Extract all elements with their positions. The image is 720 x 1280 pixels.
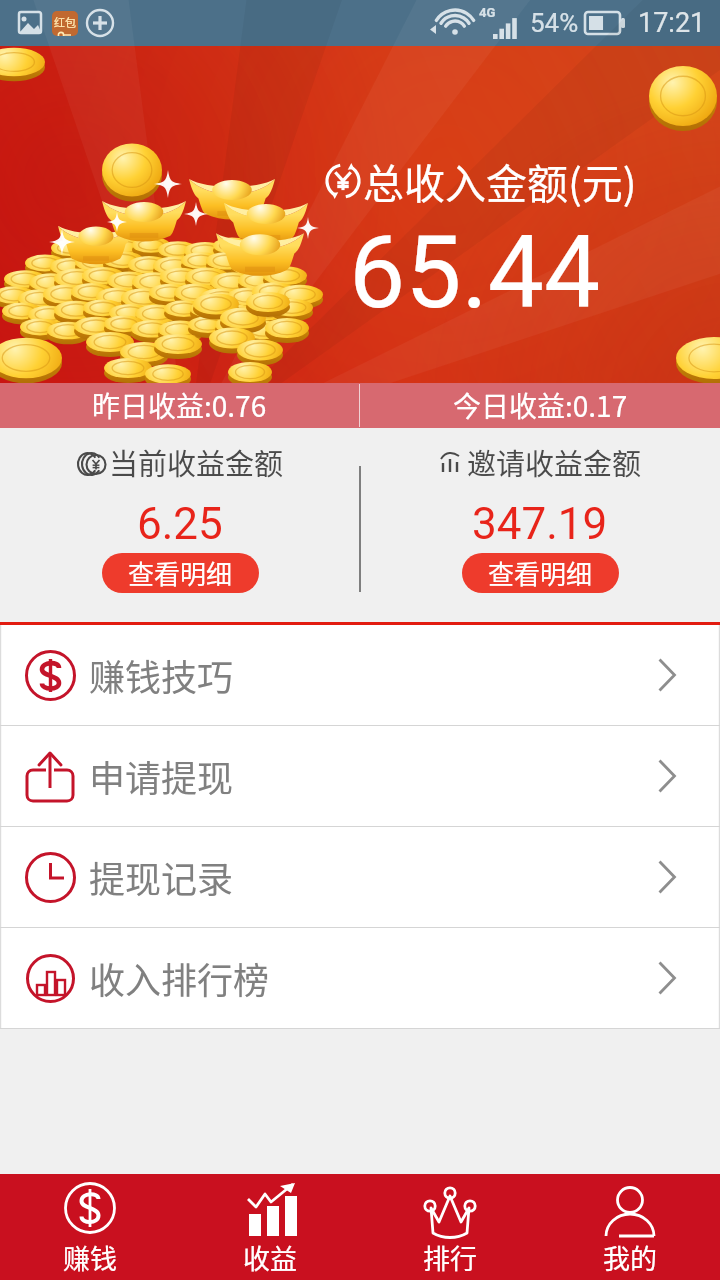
- staticText: 总收入金额(元): [363, 151, 637, 210]
- button[interactable]: 赚钱技巧: [0, 625, 720, 725]
- button[interactable]: 查看明细: [102, 553, 259, 593]
- button[interactable]: 我的: [540, 1174, 720, 1280]
- button[interactable]: 排行: [360, 1174, 540, 1280]
- staticText: 赚钱: [63, 1238, 117, 1277]
- button[interactable]: Refresh total income: [324, 162, 362, 200]
- button[interactable]: 申请提现: [0, 726, 720, 826]
- button[interactable]: 提现记录: [0, 827, 720, 927]
- staticText: 我的: [603, 1238, 657, 1277]
- staticText: 提现记录: [89, 851, 234, 903]
- button[interactable]: 收益: [180, 1174, 360, 1280]
- button[interactable]: 查看明细: [462, 553, 619, 593]
- staticText: 54%: [530, 8, 579, 38]
- staticText: 347.19: [472, 498, 608, 550]
- staticText: 申请提现: [89, 750, 234, 802]
- staticText: 邀请收益金额: [467, 441, 642, 483]
- staticText: 查看明细: [488, 554, 593, 592]
- staticText: 当前收益金额: [109, 441, 284, 483]
- staticText: 17:21: [638, 7, 706, 39]
- staticText: 查看明细: [128, 554, 233, 592]
- staticText: 6.25: [137, 498, 223, 550]
- staticText: 今日收益:0.17: [453, 385, 628, 426]
- staticText: 4G: [479, 5, 496, 20]
- staticText: 赚钱技巧: [89, 649, 234, 701]
- staticText: 收入排行榜: [89, 952, 270, 1004]
- staticText: 收益: [243, 1238, 297, 1277]
- staticText: 红包: [54, 14, 76, 30]
- button[interactable]: 赚钱: [0, 1174, 180, 1280]
- button[interactable]: 收入排行榜: [0, 928, 720, 1028]
- staticText: 65.44: [349, 214, 601, 331]
- staticText: 排行: [423, 1238, 477, 1277]
- staticText: 昨日收益:0.76: [92, 385, 267, 426]
